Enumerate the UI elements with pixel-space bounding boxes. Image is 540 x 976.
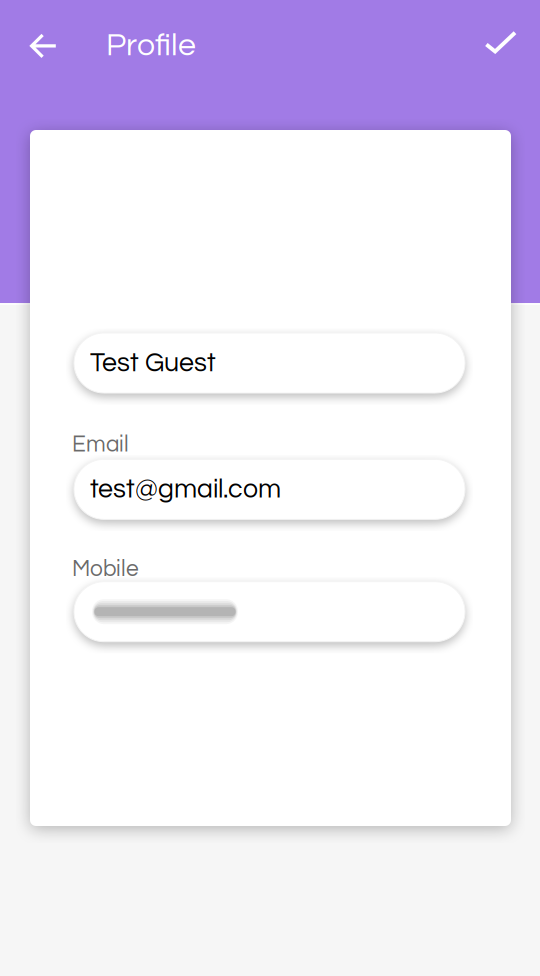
button[interactable]: Save [472,16,528,72]
staticText: Email [72,433,129,456]
staticText: Mobile [72,557,139,581]
staticText: test@gmail.com [90,476,281,503]
staticText: Profile [106,29,196,62]
button[interactable]: Back [14,16,70,72]
button[interactable]: Profile [70,16,204,72]
staticText: Test Guest [90,349,216,377]
